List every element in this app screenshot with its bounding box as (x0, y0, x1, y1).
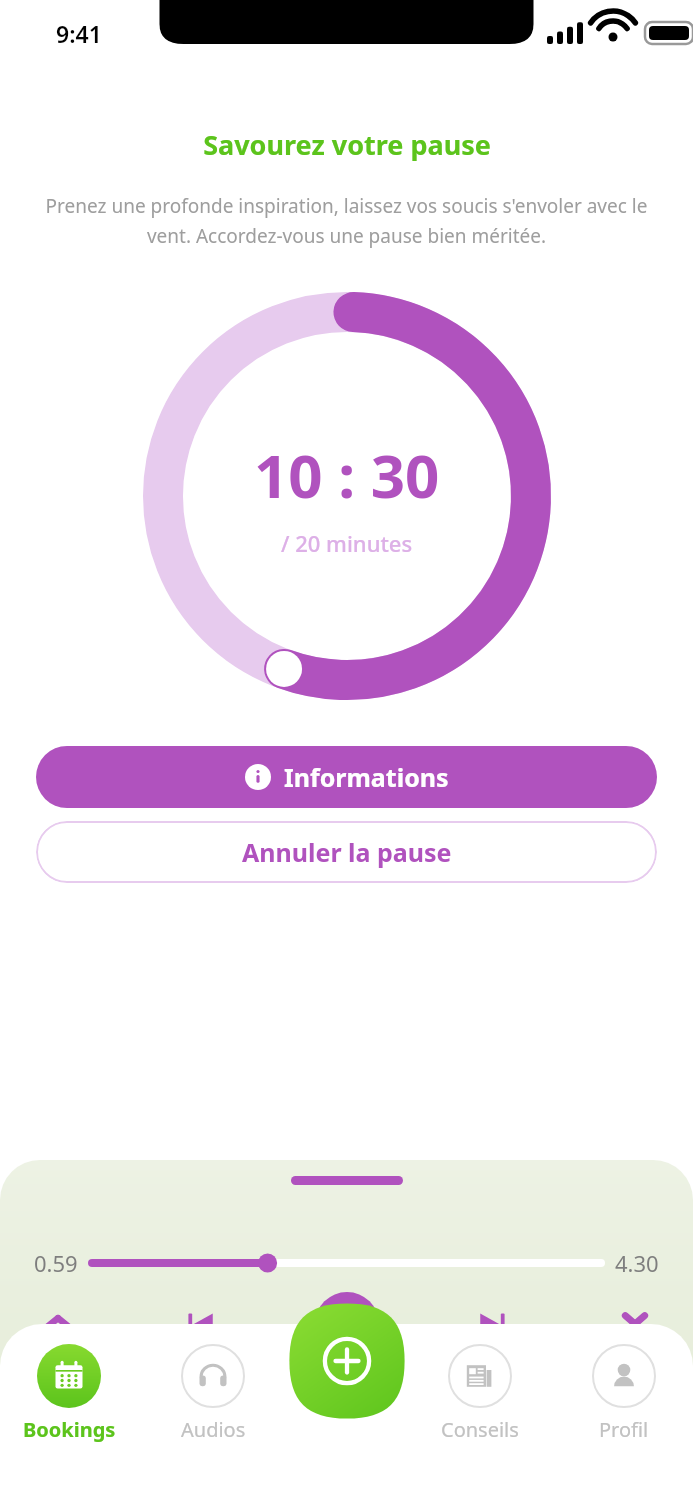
staticText: 9:41 (56, 18, 102, 49)
button[interactable]: Audios (144, 1344, 282, 1443)
button[interactable]: Expand (28, 1294, 88, 1354)
staticText: 0.59 (34, 1248, 78, 1278)
button[interactable]: Pause (315, 1292, 379, 1356)
staticText: / 20 minutes (281, 528, 413, 558)
staticText: Conseils (441, 1416, 519, 1443)
button[interactable]: Add (280, 1294, 414, 1428)
button[interactable]: Conseils (411, 1344, 549, 1443)
button[interactable]: Bookings (0, 1344, 138, 1443)
staticText: Bookings (23, 1416, 116, 1443)
staticText: 4.30 (615, 1248, 659, 1278)
staticText: Informations (284, 760, 449, 794)
button[interactable]: Drag handle (291, 1176, 403, 1185)
staticText: Savourez votre pause (203, 126, 491, 163)
button[interactable]: Informations (36, 746, 657, 808)
staticText: 10 : 30 (254, 434, 440, 516)
staticText: Audios (181, 1416, 246, 1443)
button[interactable]: Previous track (171, 1294, 231, 1354)
staticText: Annuler la pause (242, 835, 452, 869)
staticText: Prenez une profonde inspiration, laissez… (36, 193, 657, 248)
staticText: Profil (599, 1416, 649, 1443)
button[interactable]: Profil (555, 1344, 693, 1443)
button[interactable]: Annuler la pause (36, 821, 657, 883)
button[interactable]: Next track (462, 1294, 522, 1354)
button[interactable]: Close (605, 1294, 665, 1354)
